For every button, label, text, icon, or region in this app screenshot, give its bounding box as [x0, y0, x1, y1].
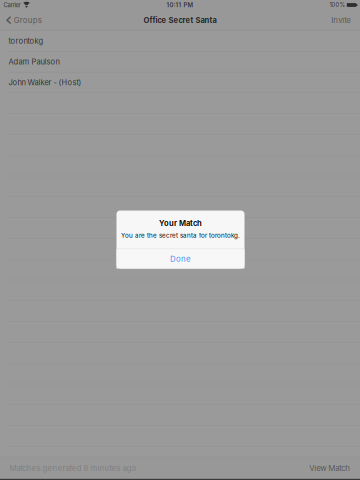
button[interactable]: John Walker - (Host)	[0, 72, 360, 93]
staticText: Groups	[14, 15, 42, 25]
staticText: Carrier	[4, 1, 21, 9]
staticText: John Walker - (Host)	[8, 78, 81, 87]
staticText: 100%	[329, 2, 344, 8]
staticText: View Match	[309, 463, 350, 473]
staticText: Matches generated 8 minutes ago	[10, 463, 137, 473]
button[interactable]: Adam Paulson	[0, 52, 360, 72]
staticText: Office Secret Santa	[143, 16, 216, 25]
staticText: torontokg	[8, 36, 43, 46]
button[interactable]: torontokg	[0, 31, 360, 52]
staticText: Adam Paulson	[8, 57, 59, 66]
button[interactable]: View Match	[290, 457, 360, 479]
staticText: Your Match	[159, 219, 202, 228]
button[interactable]: Done	[116, 249, 244, 268]
staticText: 10:11 PM	[166, 1, 193, 9]
staticText: You are the secret santa for torontokg.	[121, 232, 240, 239]
staticText: Done	[170, 254, 191, 264]
staticText: Invite	[331, 15, 351, 25]
button[interactable]: Groups	[0, 10, 70, 30]
button[interactable]: Invite	[290, 10, 360, 30]
